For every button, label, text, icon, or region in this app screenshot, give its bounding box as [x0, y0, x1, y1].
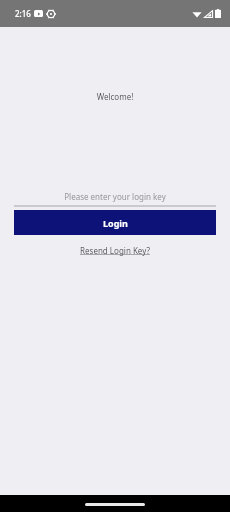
staticText: Please enter your login key	[14, 191, 216, 202]
other: Home gesture	[85, 503, 145, 506]
button[interactable]: Login	[14, 210, 216, 235]
staticText: 2:16	[15, 8, 31, 19]
staticText: Login	[103, 217, 128, 229]
button[interactable]: Please enter your login key	[14, 191, 216, 207]
staticText: Resend Login Key?	[80, 245, 150, 256]
button[interactable]: Resend Login Key?	[74, 243, 156, 258]
staticText: Welcome!	[0, 91, 230, 102]
